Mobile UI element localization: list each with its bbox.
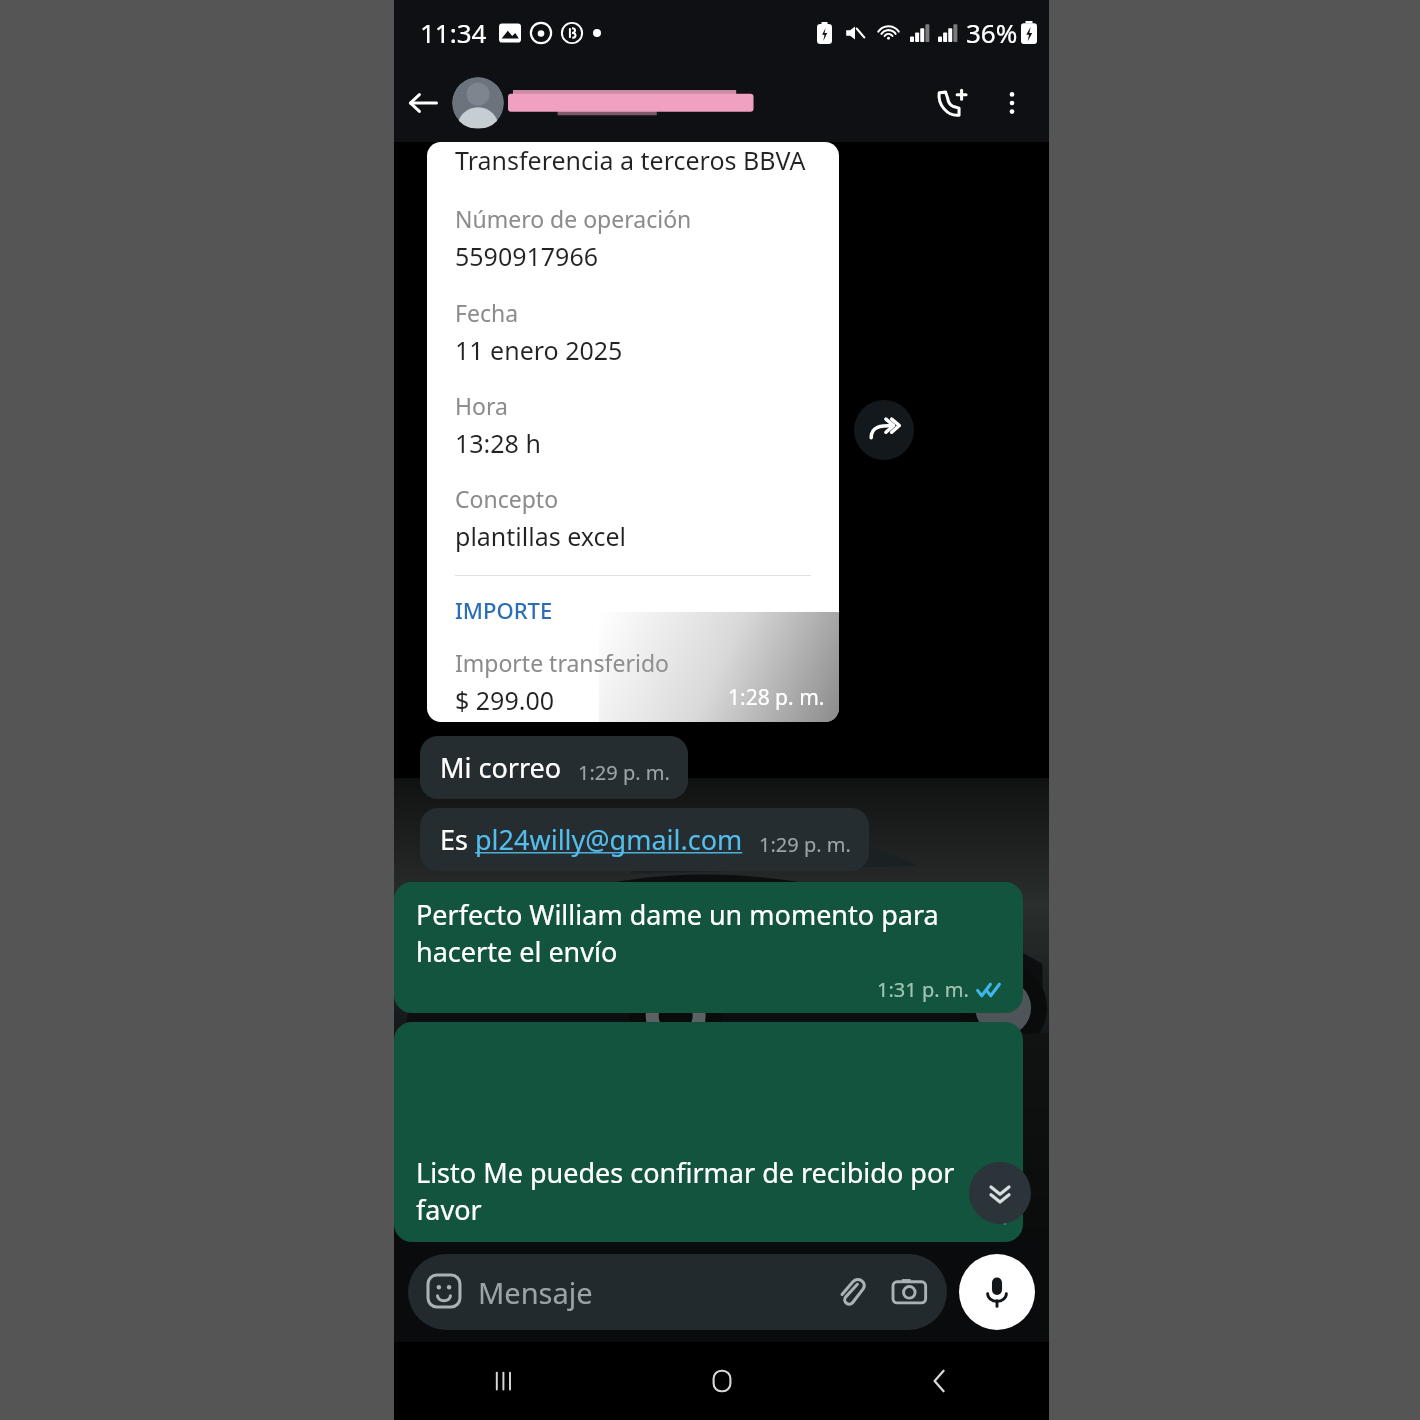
staticText: Número de operación [455, 203, 692, 234]
staticText: Mensaje [478, 1273, 593, 1312]
button[interactable]: Forward [854, 400, 914, 460]
button[interactable]: Back [394, 74, 452, 132]
other: Attach [835, 1276, 867, 1308]
staticText: Perfecto William dame un momento para ha… [416, 896, 1005, 970]
staticText: IMPORTE [455, 595, 553, 625]
staticText: Fecha [455, 297, 519, 328]
button[interactable]: Mi correo [420, 736, 688, 799]
staticText: 1:29 p. m. [759, 831, 851, 858]
other: Stickers [428, 1275, 462, 1309]
button[interactable]: Transferencia a terceros BBVA [427, 142, 839, 722]
staticText: Mi correo [440, 749, 562, 786]
staticText: Transferencia a terceros BBVA [455, 143, 806, 177]
button[interactable]: Es [420, 808, 869, 871]
button[interactable]: Video call [921, 72, 983, 134]
staticText: 1:28 p. m. [728, 683, 825, 712]
button[interactable] [452, 64, 921, 142]
staticText: $ 299.00 [455, 683, 555, 717]
button[interactable]: Stickers [408, 1254, 947, 1330]
staticText: Importe transferido [455, 647, 669, 678]
button[interactable]: Listo Me puedes confirmar de recibido po… [394, 1022, 1023, 1242]
staticText: Concepto [455, 483, 559, 514]
button[interactable]: Back [831, 1342, 1049, 1420]
other: Camera [893, 1275, 927, 1309]
button[interactable]: Recents [394, 1342, 613, 1420]
staticText: 11:34 [420, 15, 487, 50]
staticText: 13:28 h [455, 426, 541, 460]
button[interactable]: Record voice message [959, 1254, 1035, 1330]
button[interactable]: Home [613, 1342, 831, 1420]
staticText: 1:31 p. m. [877, 976, 969, 1003]
button[interactable]: Perfecto William dame un momento para ha… [394, 882, 1023, 1013]
button[interactable]: More options [983, 74, 1041, 132]
staticText: plantillas excel [455, 519, 627, 553]
staticText: pl24willy@gmail.com [475, 821, 743, 858]
staticText: 36% [966, 15, 1018, 50]
button[interactable]: Scroll to bottom [969, 1162, 1031, 1224]
staticText: Listo Me puedes confirmar de recibido po… [416, 1154, 1005, 1228]
staticText: Hora [455, 390, 508, 421]
staticText: 11 enero 2025 [455, 333, 623, 367]
staticText: 1:29 p. m. [578, 759, 670, 786]
staticText: Es [440, 821, 475, 858]
staticText: 5590917966 [455, 239, 599, 273]
